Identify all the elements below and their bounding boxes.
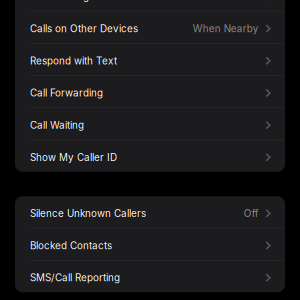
staticText: Call Blocking & Identification (30, 0, 162, 2)
staticText: Silence Unknown Callers (30, 207, 146, 219)
staticText: Calls on Other Devices (30, 23, 138, 35)
staticText: When Nearby (193, 23, 259, 35)
button[interactable]: Blocked Contacts (15, 228, 285, 260)
staticText: Off (244, 207, 259, 219)
button[interactable]: Call Waiting (15, 108, 285, 140)
staticText: Call Forwarding (30, 87, 103, 99)
staticText: Call Waiting (30, 119, 84, 131)
button[interactable]: Call Blocking & Identification (15, 0, 285, 11)
button[interactable]: Show My Caller ID (15, 140, 285, 172)
button[interactable]: Call Forwarding (15, 76, 285, 107)
button[interactable]: Calls on Other Devices (15, 12, 285, 43)
staticText: SMS/Call Reporting (30, 272, 120, 284)
button[interactable]: Silence Unknown Callers (15, 196, 285, 228)
staticText: Show My Caller ID (30, 151, 117, 163)
staticText: Respond with Text (30, 55, 117, 67)
button[interactable]: SMS/Call Reporting (15, 261, 285, 292)
button[interactable]: Respond with Text (15, 44, 285, 75)
staticText: Blocked Contacts (30, 240, 112, 251)
